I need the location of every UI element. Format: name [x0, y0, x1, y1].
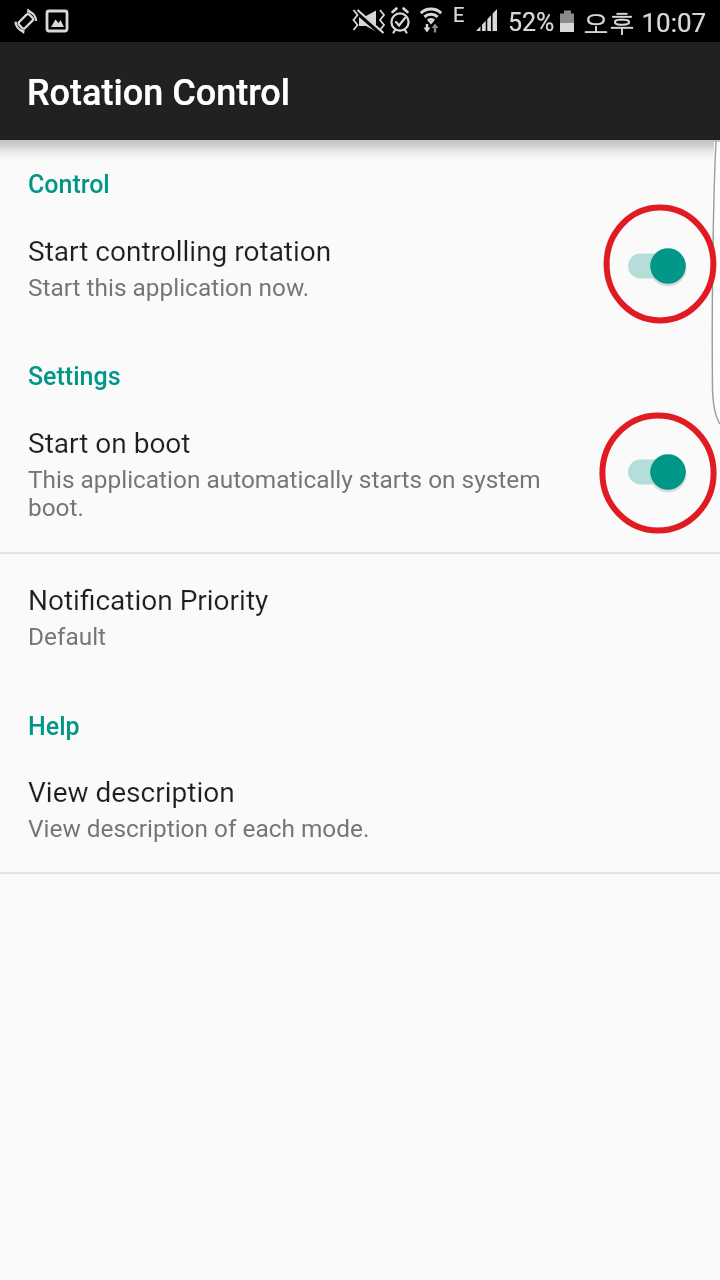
staticText: Start on boot [28, 427, 191, 460]
button[interactable]: Start on boot [0, 404, 720, 538]
staticText: Settings [28, 362, 121, 391]
staticText: 52% [508, 8, 555, 37]
staticText: Rotation Control [27, 72, 290, 114]
button[interactable]: Notification Priority [0, 562, 720, 668]
staticText: Control [28, 170, 110, 199]
button[interactable]: Start controlling rotation [0, 212, 720, 318]
button[interactable]: Toggle switch, on [620, 436, 696, 508]
button[interactable]: View description [0, 753, 720, 860]
staticText: Start controlling rotation [28, 235, 332, 268]
staticText: View description of each mode. [28, 814, 370, 843]
staticText: boot. [28, 493, 84, 522]
staticText: Help [28, 712, 80, 741]
staticText: E [453, 3, 465, 26]
staticText: Default [28, 622, 107, 651]
staticText: 오후 10:07 [583, 7, 707, 40]
staticText: This application automatically starts on… [28, 465, 541, 494]
staticText: View description [28, 776, 235, 809]
staticText: Notification Priority [28, 584, 269, 617]
staticText: Start this application now. [28, 273, 310, 302]
button[interactable]: Toggle switch, on [620, 230, 696, 302]
